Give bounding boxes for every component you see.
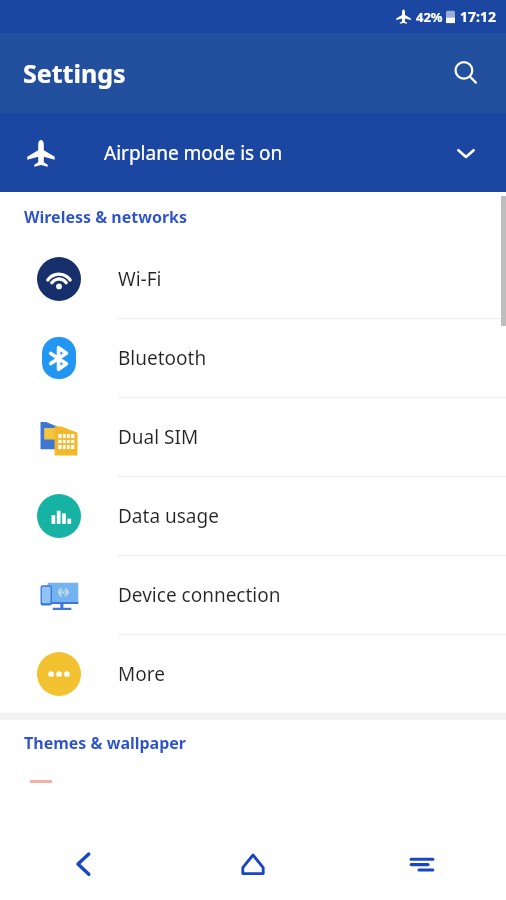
button[interactable]: Data usage bbox=[0, 477, 506, 556]
button[interactable]: Expand bbox=[448, 135, 484, 171]
staticText: Device connection bbox=[118, 582, 281, 608]
button[interactable]: Dual SIM bbox=[0, 398, 506, 477]
button[interactable]: Device connection bbox=[0, 556, 506, 635]
staticText: Themes & wallpaper bbox=[24, 732, 187, 754]
staticText: More bbox=[118, 661, 165, 687]
button[interactable]: Recents bbox=[337, 828, 506, 900]
button[interactable]: Home bbox=[168, 828, 337, 900]
staticText: Data usage bbox=[118, 503, 219, 529]
button[interactable]: Bluetooth bbox=[0, 319, 506, 398]
staticText: Bluetooth bbox=[118, 345, 207, 371]
button[interactable]: Back bbox=[0, 828, 168, 900]
button[interactable]: Search bbox=[444, 51, 488, 95]
staticText: 17:12 bbox=[460, 7, 496, 26]
staticText: Settings bbox=[23, 56, 126, 90]
staticText: Wi-Fi bbox=[118, 266, 162, 292]
staticText: Wireless & networks bbox=[24, 206, 188, 228]
staticText: Airplane mode is on bbox=[104, 140, 283, 166]
staticText: Dual SIM bbox=[118, 424, 199, 450]
staticText: 42% bbox=[416, 8, 443, 26]
button[interactable]: Wi-Fi bbox=[0, 240, 506, 319]
button[interactable]: More bbox=[0, 635, 506, 713]
button[interactable]: Airplane mode is on bbox=[0, 113, 506, 192]
